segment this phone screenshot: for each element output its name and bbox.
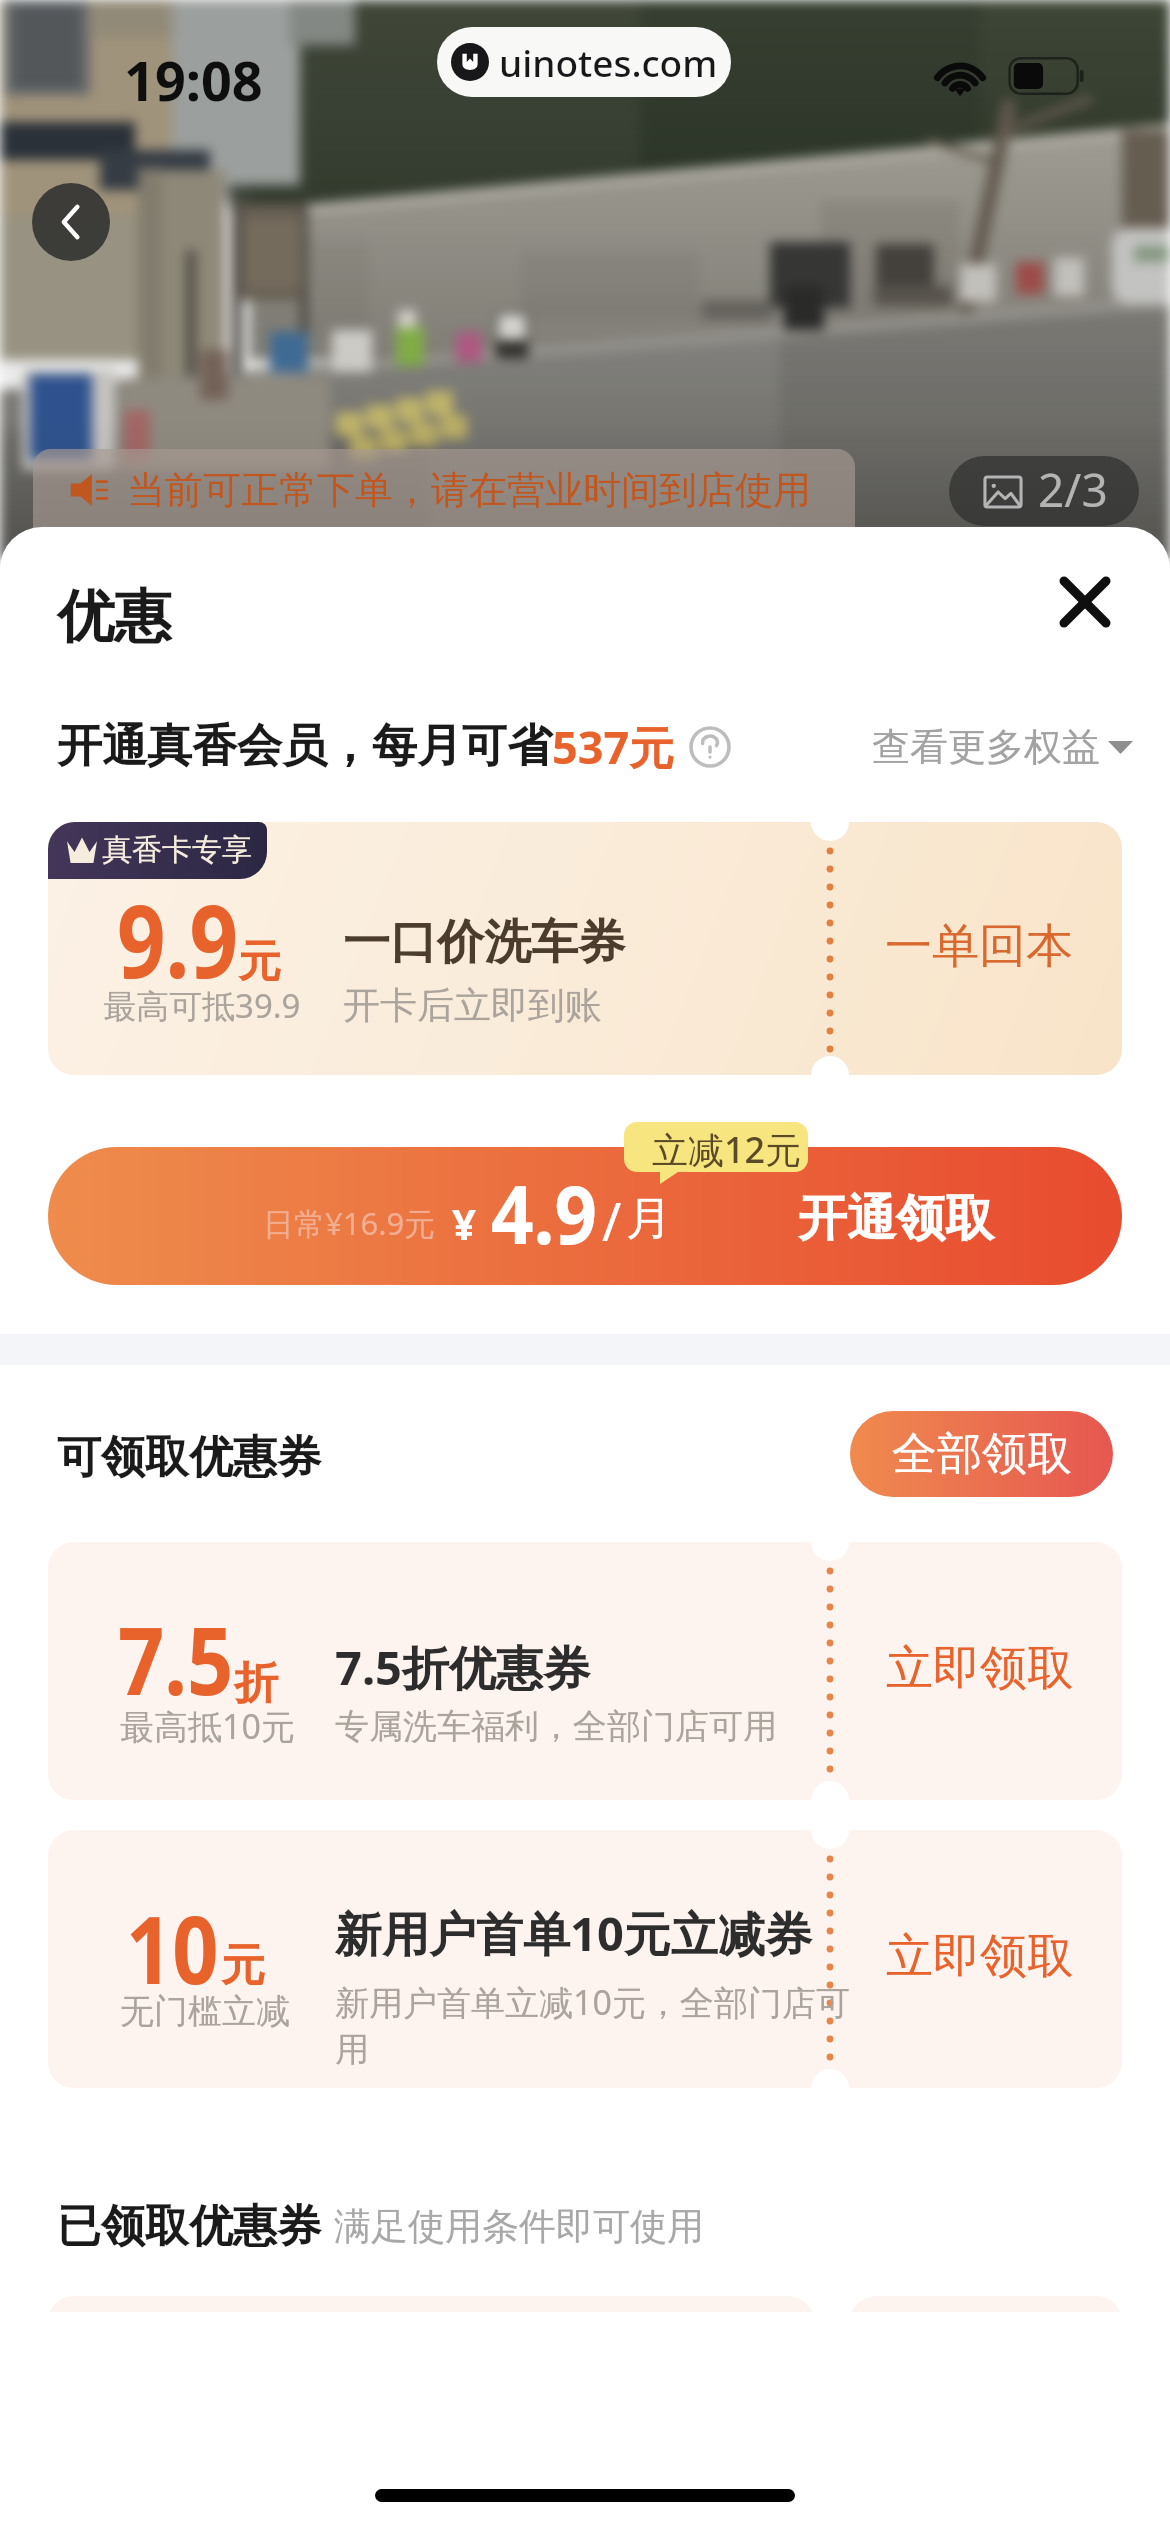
staticText: 新用户首单10元立减券 — [335, 1901, 812, 1965]
button[interactable]: 7.5 — [48, 1542, 1122, 1800]
staticText: 7.5 — [118, 1595, 233, 1723]
staticText: 查看更多权益 — [872, 723, 1100, 771]
button[interactable]: 9.9 — [48, 822, 1122, 1075]
staticText: 开卡后立即到账 — [343, 982, 602, 1029]
staticText: 折 — [234, 1656, 278, 1711]
staticText: 满足使用条件即可使用 — [334, 2203, 704, 2250]
staticText: 月 — [626, 1190, 672, 1248]
staticText: 新用户首单立减10元，全部门店可用 — [335, 1979, 865, 2071]
staticText: ¥ — [452, 1195, 477, 1252]
staticText: 537元 — [552, 716, 675, 777]
staticText: 9.9 — [117, 871, 239, 1007]
staticText: 开通领取 — [798, 1188, 994, 1250]
staticText: 4.9 — [491, 1158, 597, 1267]
button[interactable]: 全部领取 — [850, 1411, 1113, 1497]
button[interactable]: Photo 2 of 3 — [949, 456, 1139, 526]
staticText: 当前可正常下单，请在营业时间到店使用 — [127, 466, 811, 514]
staticText: 立即领取 — [886, 1927, 1074, 1986]
staticText: 可领取优惠券 — [57, 1430, 321, 1485]
button[interactable] — [48, 1147, 1122, 1285]
staticText: 优惠 — [57, 581, 171, 653]
staticText: 19:08 — [124, 43, 263, 117]
staticText: / — [602, 1185, 622, 1256]
staticText: 最高可抵39.9 — [103, 983, 301, 1028]
button[interactable]: 10 — [48, 1830, 1122, 2088]
button[interactable]: 立即领取 — [838, 1542, 1122, 1800]
button[interactable]: 查看更多权益 — [872, 723, 1133, 771]
staticText: 立即领取 — [886, 1639, 1074, 1698]
staticText: 最高抵10元 — [120, 1703, 295, 1749]
staticText: 一口价洗车券 — [343, 913, 625, 972]
staticText: 2/3 — [1038, 458, 1108, 521]
button[interactable]: 当前可正常下单，请在营业时间到店使用 — [33, 449, 855, 531]
staticText: 已领取优惠券 — [57, 2199, 321, 2254]
button[interactable]: Back — [32, 183, 110, 261]
button[interactable]: Member benefits help — [689, 726, 731, 768]
staticText: 立减12元 — [652, 1125, 802, 1174]
staticText: 开通真香会员，每月可省 — [57, 718, 552, 775]
staticText: 专属洗车福利，全部门店可用 — [335, 1705, 805, 1748]
staticText: 无门槛立减 — [120, 1990, 290, 2033]
staticText: 全部领取 — [892, 1426, 1072, 1483]
staticText: 元 — [221, 1938, 265, 1993]
button[interactable]: 立即领取 — [838, 1830, 1122, 2088]
staticText: 10 — [126, 1884, 219, 2012]
staticText: 一单回本 — [885, 917, 1073, 976]
button[interactable]: Close — [1038, 555, 1132, 649]
staticText: uinotes.com — [499, 37, 718, 87]
staticText: 元 — [238, 935, 281, 989]
staticText: 真香卡专享 — [102, 831, 252, 869]
staticText: 日常¥16.9元 — [263, 1202, 436, 1244]
staticText: 7.5折优惠券 — [335, 1635, 590, 1699]
